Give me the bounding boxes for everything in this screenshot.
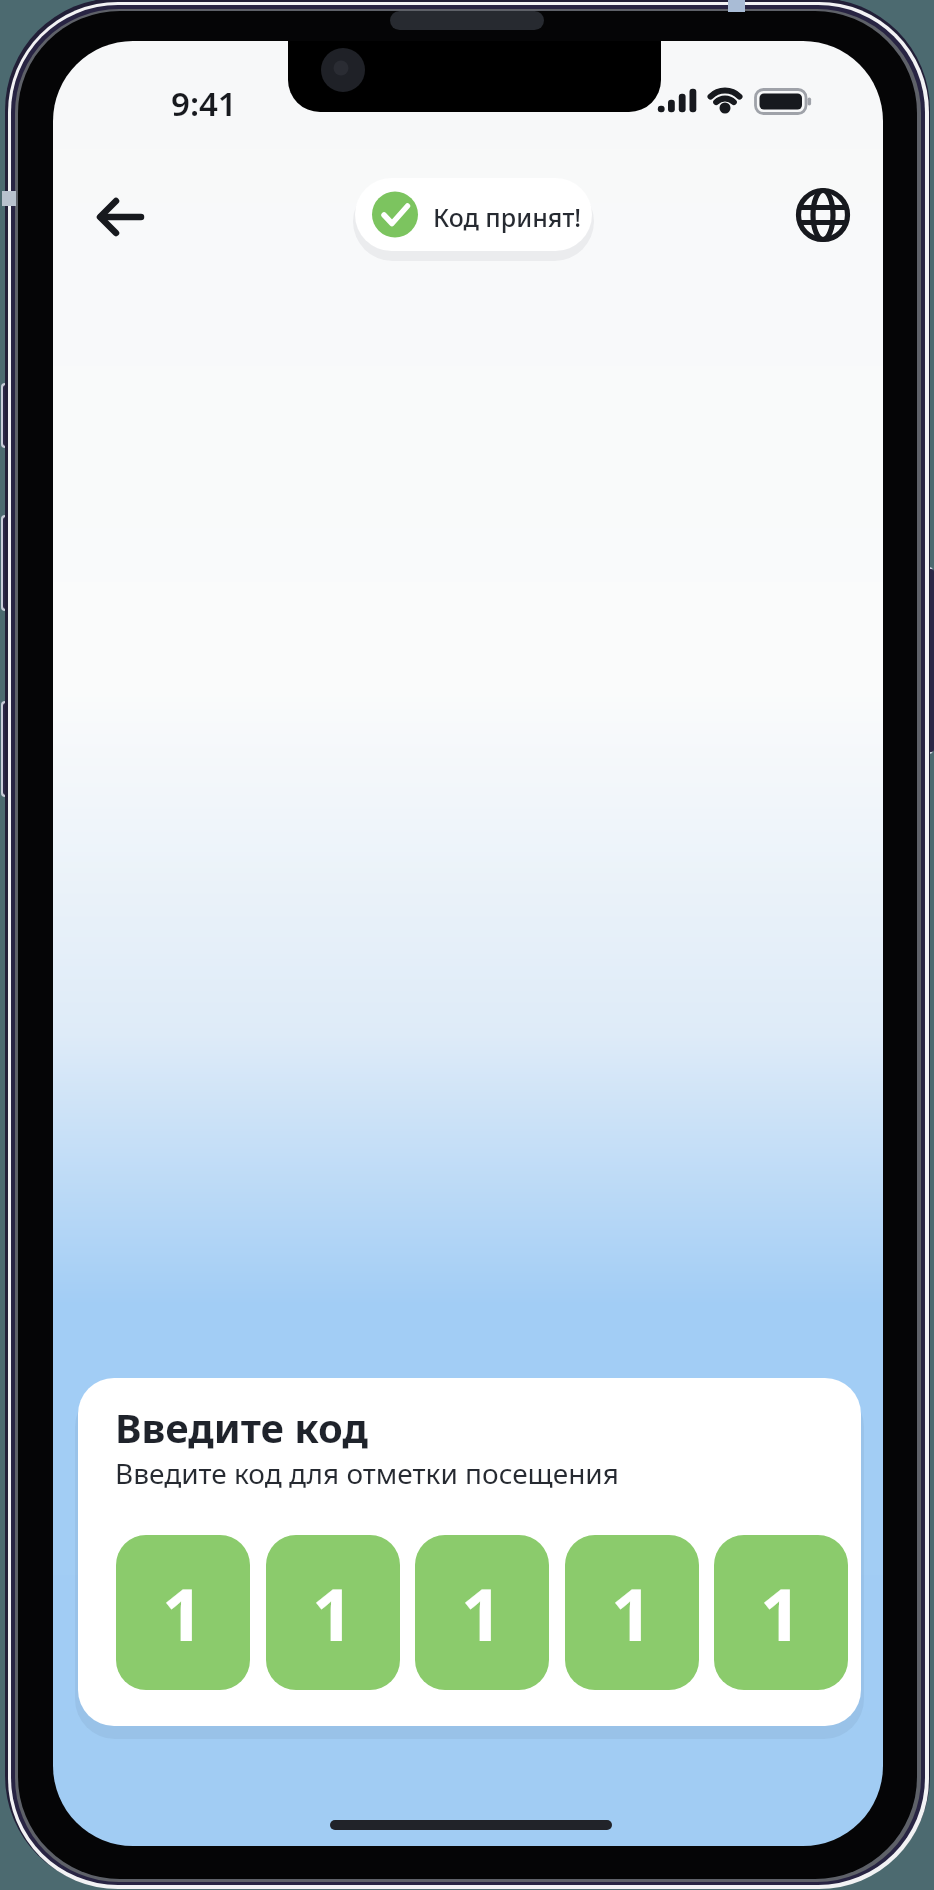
staticText: 1	[760, 1564, 802, 1662]
staticText: 9:41	[171, 81, 237, 126]
button[interactable]: Код принят!	[355, 178, 592, 251]
button[interactable]	[79, 197, 161, 257]
staticText: Введите код	[115, 1400, 369, 1454]
button[interactable]: 1	[415, 1535, 549, 1690]
staticText: 1	[312, 1564, 354, 1662]
button[interactable]: 1	[266, 1535, 400, 1690]
staticText: 1	[162, 1564, 204, 1662]
staticText: Код принят!	[433, 200, 582, 234]
button[interactable]: 1	[714, 1535, 848, 1690]
button[interactable]: 1	[565, 1535, 699, 1690]
button[interactable]	[793, 185, 853, 245]
staticText: Введите код для отметки посещения	[115, 1454, 619, 1492]
staticText: 1	[461, 1564, 503, 1662]
staticText: 1	[611, 1564, 653, 1662]
button[interactable]: 1	[116, 1535, 250, 1690]
